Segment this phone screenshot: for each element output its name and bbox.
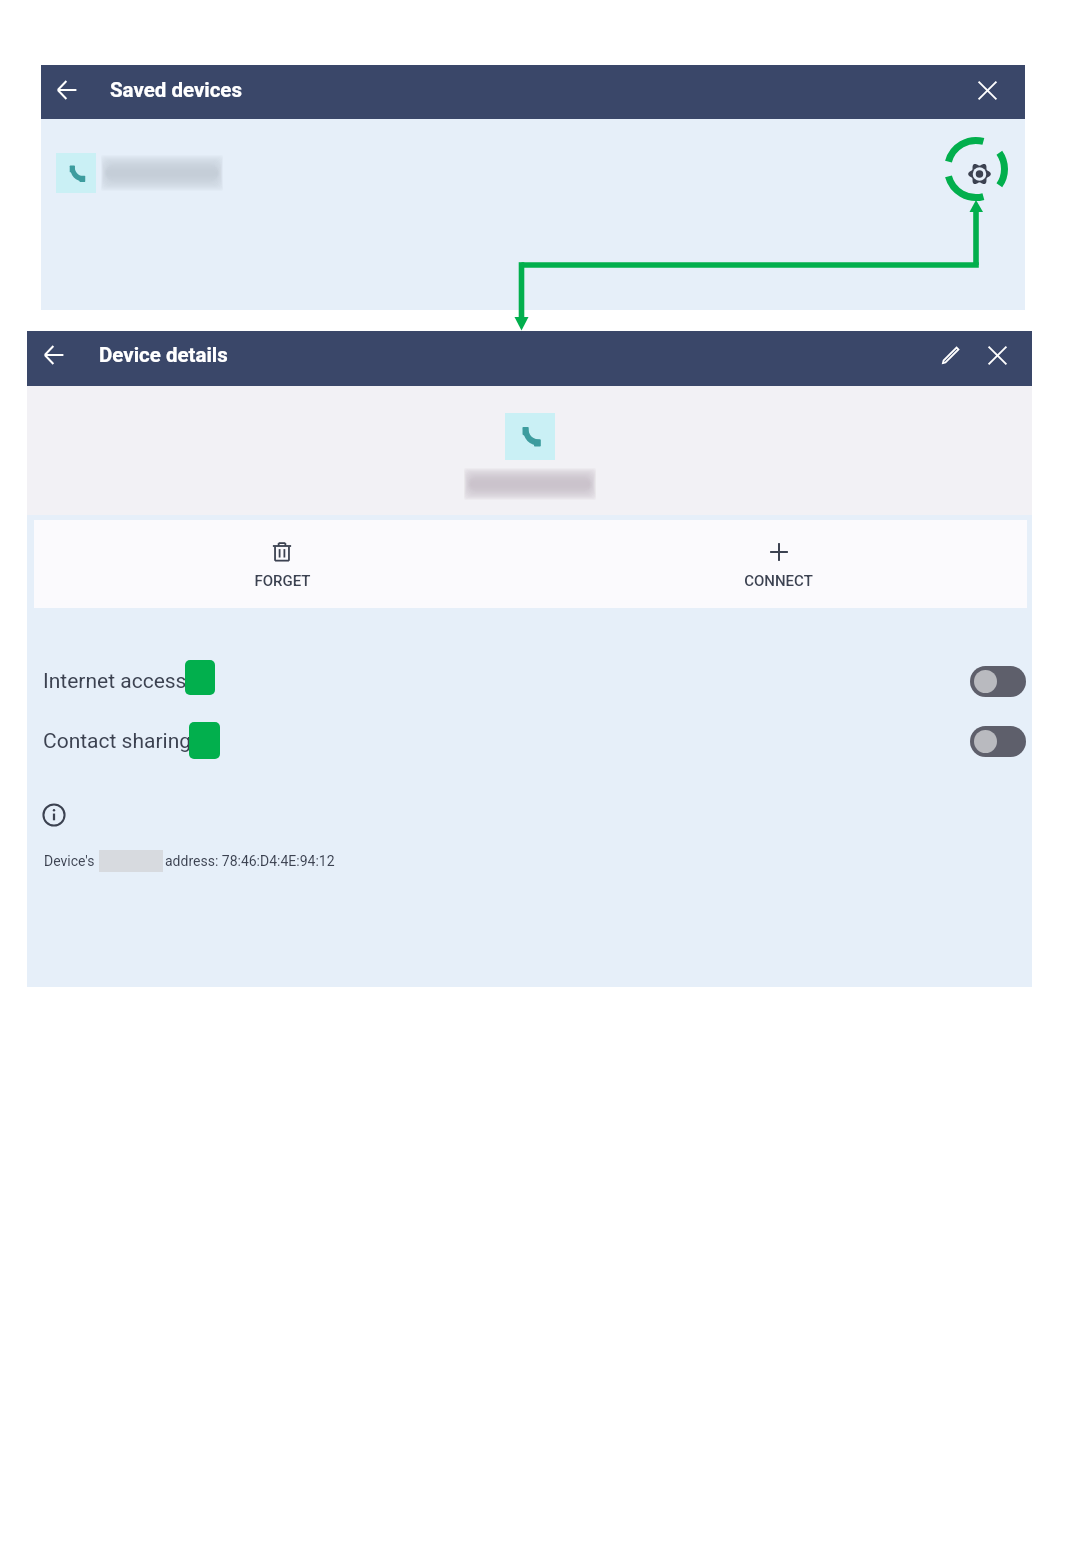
button[interactable]: Edit [929, 334, 971, 376]
button[interactable]: Close [976, 334, 1018, 376]
button[interactable]: Back [32, 333, 76, 377]
staticText: Contact sharing [43, 729, 192, 754]
staticText: Internet access [43, 669, 187, 694]
button[interactable]: Contact sharing [27, 721, 1032, 761]
staticText: Saved devices [110, 78, 242, 102]
button[interactable]: Back [45, 68, 89, 112]
staticText: Device details [99, 343, 228, 367]
staticText: address: 78:46:D4:4E:94:12 [165, 853, 335, 869]
button[interactable]: Internet access [27, 661, 1032, 701]
staticText: FORGET [254, 572, 311, 590]
staticText: CONNECT [744, 572, 813, 590]
button[interactable]: Close [966, 69, 1008, 111]
staticText: Device's [44, 853, 95, 869]
button[interactable]: CONNECT [530, 520, 1027, 608]
button[interactable]: FORGET [34, 520, 530, 608]
